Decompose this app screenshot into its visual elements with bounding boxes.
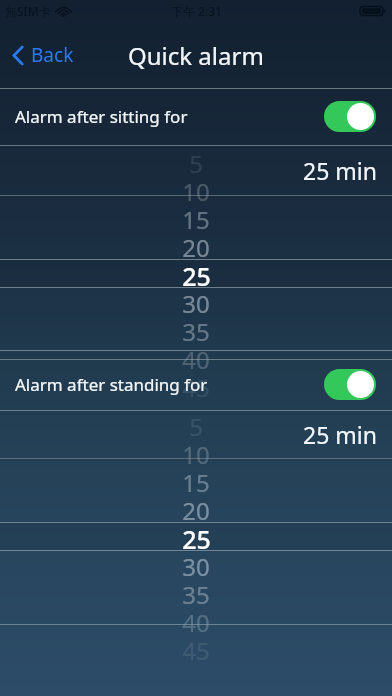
staticText: 30 <box>182 287 210 315</box>
staticText: 25 <box>182 522 211 550</box>
staticText: 5 <box>189 410 203 438</box>
staticText: 35 <box>182 578 210 606</box>
button[interactable]: 5 <box>0 458 392 624</box>
staticText: 45 <box>182 371 210 399</box>
staticText: 20 <box>182 231 210 259</box>
button[interactable]: Back <box>8 36 78 74</box>
staticText: 無SIM卡 <box>5 3 51 19</box>
staticText: 5 <box>189 147 203 175</box>
staticText: 20 <box>182 494 210 522</box>
staticText: Alarm after sitting for <box>15 105 324 128</box>
staticText: 10 <box>182 438 210 466</box>
staticText: 15 <box>182 466 210 494</box>
staticText: 25 min <box>303 419 377 450</box>
staticText: 25 <box>182 259 211 287</box>
button[interactable]: Alarm after standing for <box>0 359 392 410</box>
staticText: 30 <box>182 550 210 578</box>
button[interactable]: Toggle Alarm after sitting for <box>324 101 376 132</box>
staticText: 15 <box>182 203 210 231</box>
staticText: Back <box>31 42 74 68</box>
button[interactable]: 25 min <box>0 145 392 195</box>
staticText: Quick alarm <box>128 39 264 72</box>
button[interactable]: Alarm after sitting for <box>0 88 392 145</box>
staticText: Alarm after standing for <box>15 373 324 396</box>
staticText: 下午 2:31 <box>171 3 222 19</box>
button[interactable]: 25 min <box>0 410 392 458</box>
staticText: 40 <box>182 606 210 634</box>
staticText: 35 <box>182 315 210 343</box>
staticText: 25 min <box>303 155 377 186</box>
staticText: 45 <box>182 634 210 662</box>
staticText: 40 <box>182 343 210 371</box>
button[interactable]: Toggle Alarm after standing for <box>324 369 376 400</box>
button[interactable]: 5 <box>0 195 392 350</box>
staticText: 10 <box>182 175 210 203</box>
